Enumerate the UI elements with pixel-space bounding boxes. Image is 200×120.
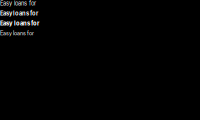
- staticText: Easy loans for: [0, 0, 36, 7]
- staticText: Easy loans for: [0, 20, 39, 27]
- staticText: Easy loans for: [0, 10, 38, 17]
- staticText: Easy loans for: [0, 30, 34, 37]
